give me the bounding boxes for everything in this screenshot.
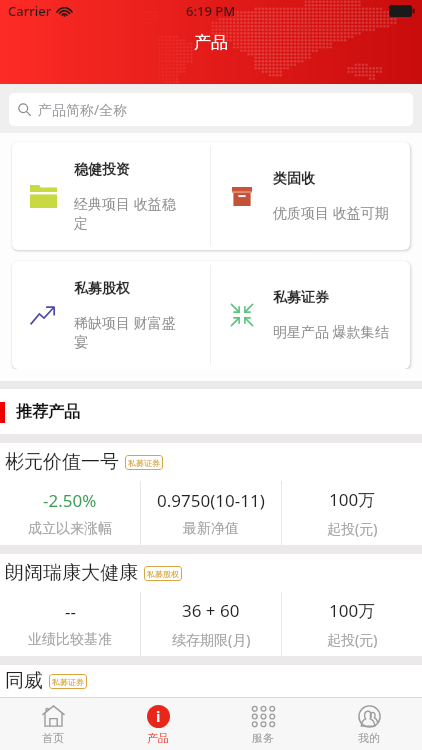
button[interactable]: 私募证券 bbox=[211, 261, 410, 369]
button[interactable]: 彬元价值一号 bbox=[0, 443, 422, 545]
staticText: 产品简称/全称 bbox=[38, 100, 128, 119]
staticText: 优质项目 收益可期 bbox=[273, 203, 389, 222]
staticText: 业绩比较基准 bbox=[28, 631, 112, 649]
staticText: 类固收 bbox=[273, 170, 315, 188]
staticText: 起投(元) bbox=[327, 630, 378, 649]
staticText: 产品 bbox=[194, 32, 228, 53]
button[interactable]: 同威 bbox=[0, 665, 422, 697]
button[interactable]: 类固收 bbox=[211, 142, 410, 250]
staticText: 稀缺项目 财富盛宴 bbox=[74, 313, 188, 351]
staticText: 彬元价值一号 bbox=[5, 450, 119, 474]
staticText: 续存期限(月) bbox=[172, 630, 251, 649]
staticText: 0.9750(10-11) bbox=[157, 489, 265, 512]
button[interactable]: 朗阔瑞康大健康 bbox=[0, 554, 422, 656]
staticText: 私募股权 bbox=[74, 280, 130, 298]
staticText: 推荐产品 bbox=[16, 402, 80, 422]
staticText: i bbox=[156, 707, 161, 726]
staticText: 首页 bbox=[42, 731, 64, 745]
staticText: 36 + 60 bbox=[182, 599, 240, 622]
button[interactable]: 我的 bbox=[316, 698, 422, 750]
staticText: 同威 bbox=[5, 669, 43, 693]
staticText: 100万 bbox=[329, 599, 376, 622]
button[interactable]: 服务 bbox=[210, 698, 316, 750]
staticText: 最新净值 bbox=[183, 520, 239, 538]
staticText: 产品 bbox=[147, 731, 169, 745]
staticText: Carrier bbox=[8, 2, 52, 20]
staticText: 起投(元) bbox=[327, 519, 378, 538]
staticText: 100万 bbox=[329, 488, 376, 511]
staticText: 朗阔瑞康大健康 bbox=[5, 561, 138, 585]
staticText: 稳健投资 bbox=[74, 161, 130, 179]
staticText: -- bbox=[65, 600, 76, 623]
staticText: 私募股权 bbox=[147, 569, 179, 579]
button[interactable]: 稳健投资 bbox=[12, 142, 210, 250]
staticText: 私募证券 bbox=[273, 289, 329, 307]
staticText: 经典项目 收益稳定 bbox=[74, 194, 188, 232]
staticText: 成立以来涨幅 bbox=[28, 520, 112, 538]
button[interactable]: i bbox=[105, 698, 210, 750]
staticText: 私募证券 bbox=[52, 677, 84, 687]
staticText: 服务 bbox=[252, 731, 274, 745]
staticText: 我的 bbox=[358, 731, 380, 745]
staticText: -2.50% bbox=[43, 489, 97, 512]
staticText: 私募证券 bbox=[128, 458, 160, 468]
button[interactable]: 产品简称/全称 bbox=[9, 93, 413, 126]
button[interactable]: 首页 bbox=[0, 698, 105, 750]
staticText: 6:19 PM bbox=[186, 2, 236, 20]
button[interactable]: 私募股权 bbox=[12, 261, 210, 369]
staticText: 明星产品 爆款集结 bbox=[273, 322, 389, 341]
